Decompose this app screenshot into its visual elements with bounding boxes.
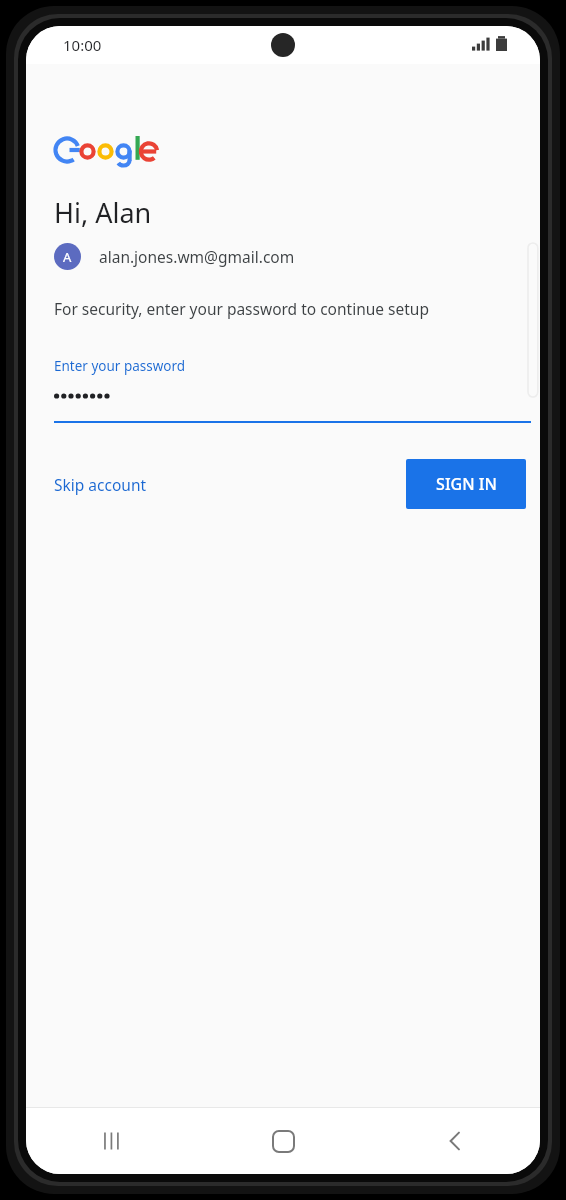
staticText: alan.jones.wm@gmail.com <box>99 246 295 267</box>
staticText: Skip account <box>54 474 147 495</box>
staticText: A <box>63 248 72 266</box>
button[interactable]: A <box>54 243 295 270</box>
button[interactable]: Back <box>369 1108 540 1174</box>
staticText: Hi, Alan <box>54 194 152 231</box>
staticText: Enter your password <box>54 357 186 375</box>
button[interactable]: Home <box>198 1108 369 1174</box>
other: Google <box>54 132 154 166</box>
button[interactable]: Skip account <box>54 468 147 501</box>
button[interactable]: SIGN IN <box>406 459 526 509</box>
button[interactable]: Enter your password <box>54 357 531 423</box>
button[interactable]: Recent apps <box>26 1108 198 1174</box>
staticText: 10:00 <box>63 35 102 55</box>
staticText: For security, enter your password to con… <box>54 298 429 319</box>
staticText: SIGN IN <box>436 473 497 495</box>
